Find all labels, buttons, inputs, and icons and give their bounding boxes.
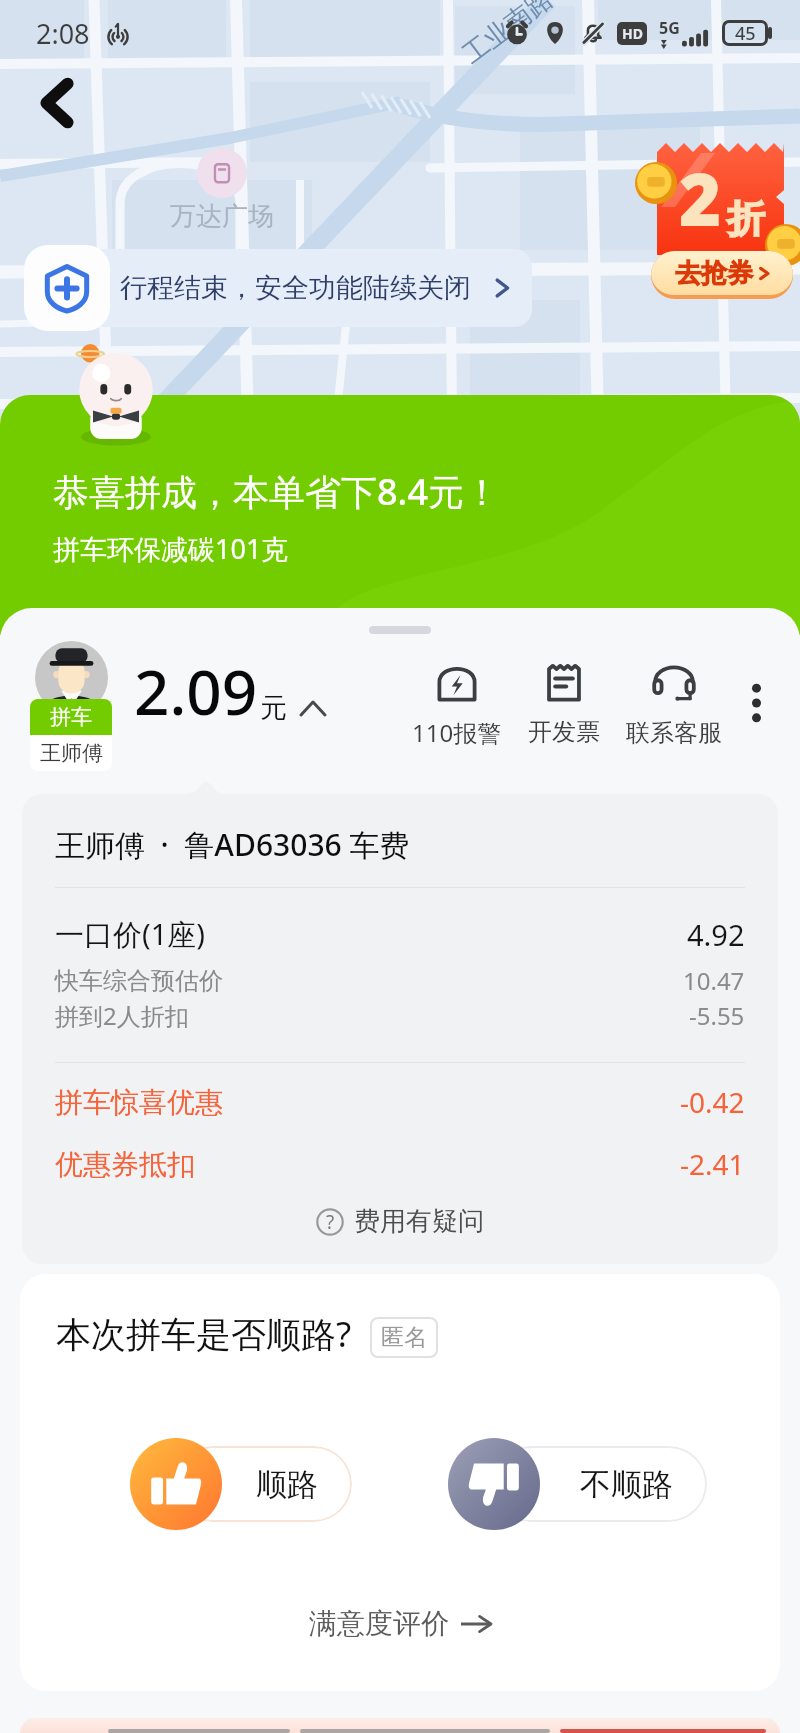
staticText: ? [326,1209,335,1235]
staticText: 去抢券 [675,257,753,290]
button[interactable]: 2.09 [134,649,325,757]
staticText: -0.42 [680,1083,745,1121]
staticText: 联系客服 [626,718,722,748]
button[interactable]: Back [24,70,90,136]
button[interactable]: 2折 去抢券 [634,133,800,308]
button[interactable]: 开发票 [526,655,602,751]
staticText: 王师傅 [40,740,103,766]
staticText: 不顺路 [580,1465,673,1504]
staticText: 万达广场 [170,200,274,233]
staticText: 2 [679,149,722,247]
button[interactable]: 行程结束，安全功能陆续关闭 [58,249,532,327]
staticText: 2:08 [36,15,90,52]
staticText: 顺路 [256,1465,318,1504]
staticText: 拼车 [50,704,92,730]
staticText: 5G [659,17,680,39]
staticText: 110报警 [412,716,502,749]
staticText: 拼车环保减碳101克 [53,530,289,567]
staticText: 本次拼车是否顺路? [56,1310,352,1358]
button[interactable]: 联系客服 [624,654,724,752]
staticText: 快车综合预估价 [55,966,223,996]
button[interactable]: ? [55,1205,745,1238]
button[interactable]: 更多 [732,679,780,727]
staticText: 元 [260,691,287,725]
staticText: 10.47 [683,964,745,997]
staticText: 满意度评价 [309,1606,449,1641]
button[interactable]: 满意度评价 [20,1606,780,1641]
staticText: 一口价(1座) [55,914,205,954]
staticText: 匿名 [381,1323,427,1352]
staticText: 费用有疑问 [354,1205,484,1238]
button[interactable]: 不顺路 [448,1438,663,1530]
staticText: 恭喜拼成，本单省下8.4元！ [53,467,500,516]
staticText: 拼到2人折扣 [55,999,189,1032]
staticText: 45 [735,21,756,46]
staticText: 折 [727,195,765,243]
button[interactable]: 110报警 [410,654,504,753]
staticText: HD [622,24,643,43]
staticText: 优惠券抵扣 [55,1147,195,1182]
staticText: -2.41 [680,1145,745,1183]
staticText: 开发票 [528,717,600,747]
staticText: 王师傅 · 鲁AD63036 车费 [55,824,410,865]
staticText: 工业南路 [456,0,559,71]
button[interactable]: 顺路 [130,1438,308,1530]
staticText: 拼车惊喜优惠 [55,1085,223,1120]
staticText: 行程结束，安全功能陆续关闭 [120,271,471,305]
staticText: -5.55 [689,999,745,1032]
staticText: 2.09 [134,649,258,733]
staticText: 4.92 [687,915,745,954]
